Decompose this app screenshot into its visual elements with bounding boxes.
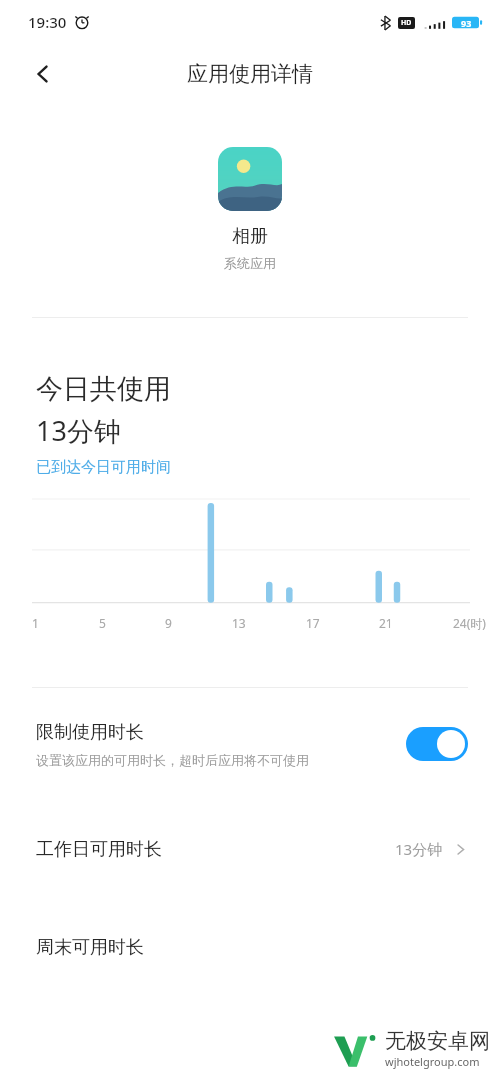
staticText: 93 <box>461 17 472 29</box>
staticText: 19:30 <box>28 12 67 32</box>
button[interactable]: 工作日可用时长 <box>0 800 500 898</box>
staticText: HD <box>401 18 412 28</box>
staticText: 13 <box>232 615 246 631</box>
button[interactable]: 限制使用时长开关 <box>406 727 468 761</box>
staticText: 设置该应用的可用时长，超时后应用将不可使用 <box>36 752 309 768</box>
staticText: 5 <box>99 615 106 631</box>
staticText: 无极安卓网 <box>385 1028 490 1054</box>
staticText: 系统应用 <box>224 255 276 271</box>
staticText: 限制使用时长 <box>36 721 144 744</box>
staticText: 应用使用详情 <box>187 61 313 87</box>
button[interactable]: 限制使用时长 <box>0 688 500 800</box>
button[interactable]: 返回 <box>20 51 66 97</box>
staticText: 13分钟 <box>36 412 121 449</box>
staticText: 9 <box>165 615 172 631</box>
staticText: 24(时) <box>453 615 486 631</box>
button[interactable]: 周末可用时长 <box>0 898 500 996</box>
staticText: 13分钟 <box>395 839 443 859</box>
staticText: 1 <box>32 615 39 631</box>
staticText: 17 <box>306 615 320 631</box>
button[interactable] <box>218 147 282 211</box>
staticText: 21 <box>379 615 393 631</box>
staticText: 今日共使用 <box>36 372 171 406</box>
staticText: 工作日可用时长 <box>36 838 395 861</box>
staticText: 周末可用时长 <box>36 936 468 959</box>
staticText: 相册 <box>232 225 268 248</box>
staticText: wjhotelgroup.com <box>385 1054 480 1069</box>
staticText: 已到达今日可用时间 <box>36 458 171 477</box>
